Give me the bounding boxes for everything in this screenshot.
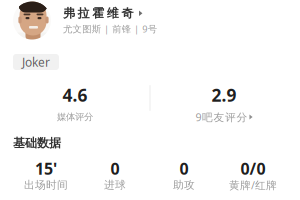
staticText: 助攻 [173, 178, 195, 191]
staticText: 2.9 [211, 83, 236, 106]
staticText: 尤文图斯 | 前锋 | 9号 [63, 23, 157, 35]
button[interactable]: 弗拉霍维奇 [13, 0, 293, 40]
staticText: 出场时间 [24, 178, 68, 191]
staticText: 媒体评分 [57, 111, 93, 123]
staticText: 9吧友评分 [195, 110, 247, 124]
staticText: 0 [110, 158, 119, 179]
staticText: 0/0 [240, 158, 265, 179]
staticText: 弗拉霍维奇 [63, 6, 133, 21]
staticText: 黄牌/红牌 [229, 178, 277, 192]
staticText: Joker [22, 54, 50, 70]
staticText: 进球 [104, 178, 126, 191]
staticText: 4.6 [62, 83, 87, 106]
staticText: 15' [35, 158, 57, 179]
staticText: 基础数据 [13, 136, 61, 150]
staticText: 0 [179, 158, 188, 179]
button[interactable]: 2.9 [154, 76, 294, 136]
